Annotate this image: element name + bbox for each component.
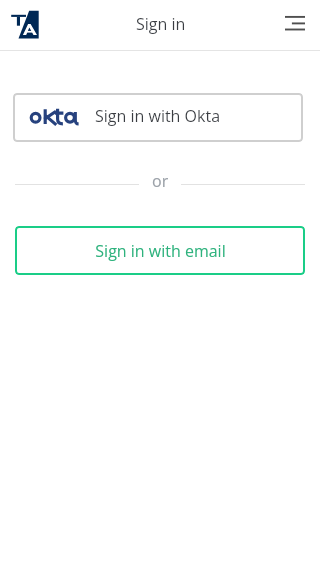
button[interactable]: Open menu <box>277 3 313 49</box>
button[interactable]: Triple-A home <box>0 0 48 48</box>
staticText: Sign in <box>136 13 186 35</box>
staticText: or <box>152 170 169 192</box>
button[interactable]: Sign in with email <box>15 226 305 275</box>
button[interactable]: Sign in with Okta <box>13 93 303 142</box>
staticText: Sign in with Okta <box>95 105 221 127</box>
staticText: Sign in with email <box>95 240 226 262</box>
